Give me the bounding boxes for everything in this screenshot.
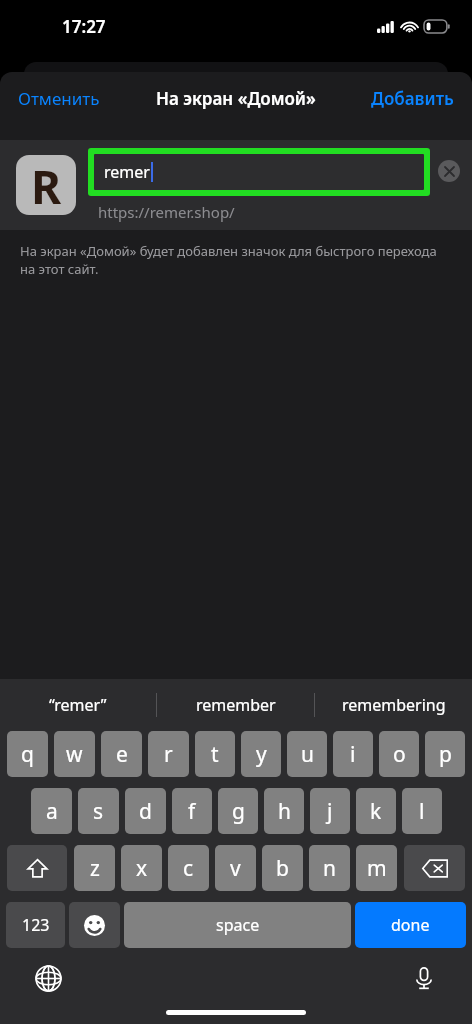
- staticText: d: [139, 797, 152, 826]
- button[interactable]: Shift: [7, 845, 67, 891]
- button[interactable]: f: [172, 788, 212, 834]
- staticText: remembering: [342, 694, 446, 716]
- button[interactable]: Эмодзи: [69, 902, 120, 948]
- button[interactable]: b: [262, 845, 303, 891]
- button[interactable]: q: [7, 731, 48, 777]
- staticText: j: [327, 797, 333, 826]
- staticText: e: [116, 740, 128, 769]
- staticText: “remer”: [49, 694, 107, 716]
- button[interactable]: j: [310, 788, 350, 834]
- button[interactable]: o: [379, 731, 419, 777]
- button[interactable]: x: [121, 845, 162, 891]
- button[interactable]: Сменить язык: [28, 958, 68, 998]
- button[interactable]: i: [333, 731, 373, 777]
- staticText: z: [90, 854, 100, 883]
- staticText: l: [419, 797, 425, 826]
- staticText: g: [232, 797, 245, 826]
- button[interactable]: s: [78, 788, 119, 834]
- button[interactable]: m: [356, 845, 397, 891]
- button[interactable]: c: [168, 845, 209, 891]
- staticText: space: [216, 914, 260, 936]
- button[interactable]: remembering: [315, 679, 472, 731]
- staticText: k: [370, 797, 382, 826]
- staticText: f: [188, 797, 196, 826]
- button[interactable]: h: [264, 788, 304, 834]
- button[interactable]: d: [125, 788, 166, 834]
- staticText: i: [350, 740, 356, 769]
- button[interactable]: 123: [6, 902, 65, 948]
- button[interactable]: l: [402, 788, 442, 834]
- button[interactable]: t: [195, 731, 235, 777]
- staticText: p: [439, 740, 452, 769]
- staticText: c: [183, 854, 194, 883]
- button[interactable]: Удалить: [404, 845, 465, 891]
- staticText: На экран «Домой» будет добавлен значок д…: [20, 242, 437, 278]
- button[interactable]: k: [356, 788, 396, 834]
- button[interactable]: Отменить: [0, 79, 118, 118]
- staticText: R: [31, 155, 62, 215]
- staticText: remember: [196, 694, 276, 716]
- staticText: Добавить: [371, 87, 454, 110]
- button[interactable]: u: [287, 731, 327, 777]
- staticText: u: [301, 740, 314, 769]
- button[interactable]: z: [74, 845, 115, 891]
- button[interactable]: Очистить: [438, 160, 460, 182]
- button[interactable]: done: [355, 902, 466, 948]
- button[interactable]: remember: [157, 679, 314, 731]
- staticText: remer: [104, 161, 150, 183]
- button[interactable]: n: [309, 845, 350, 891]
- staticText: n: [323, 854, 336, 883]
- staticText: done: [391, 914, 430, 936]
- staticText: t: [211, 740, 219, 769]
- staticText: https://remer.shop/: [98, 202, 235, 222]
- button[interactable]: a: [31, 788, 72, 834]
- staticText: m: [367, 854, 387, 883]
- button[interactable]: v: [215, 845, 256, 891]
- staticText: Отменить: [18, 87, 100, 110]
- staticText: v: [230, 854, 241, 883]
- staticText: s: [93, 797, 104, 826]
- staticText: На экран «Домой»: [156, 87, 316, 110]
- staticText: w: [66, 740, 83, 769]
- staticText: a: [46, 797, 58, 826]
- button[interactable]: Диктовка: [404, 958, 444, 998]
- button[interactable]: Добавить: [353, 79, 472, 118]
- staticText: r: [164, 740, 173, 769]
- staticText: 123: [22, 914, 50, 936]
- button[interactable]: space: [124, 902, 351, 948]
- button[interactable]: g: [218, 788, 258, 834]
- button[interactable]: w: [54, 731, 95, 777]
- button[interactable]: p: [425, 731, 465, 777]
- button[interactable]: “remer”: [0, 679, 156, 731]
- staticText: h: [278, 797, 291, 826]
- staticText: 17:27: [62, 15, 106, 38]
- staticText: o: [393, 740, 406, 769]
- staticText: b: [276, 854, 289, 883]
- staticText: q: [21, 740, 34, 769]
- staticText: y: [256, 740, 267, 769]
- staticText: x: [136, 854, 148, 883]
- button[interactable]: y: [241, 731, 281, 777]
- button[interactable]: e: [101, 731, 142, 777]
- button[interactable]: remer: [94, 154, 424, 190]
- button[interactable]: r: [148, 731, 189, 777]
